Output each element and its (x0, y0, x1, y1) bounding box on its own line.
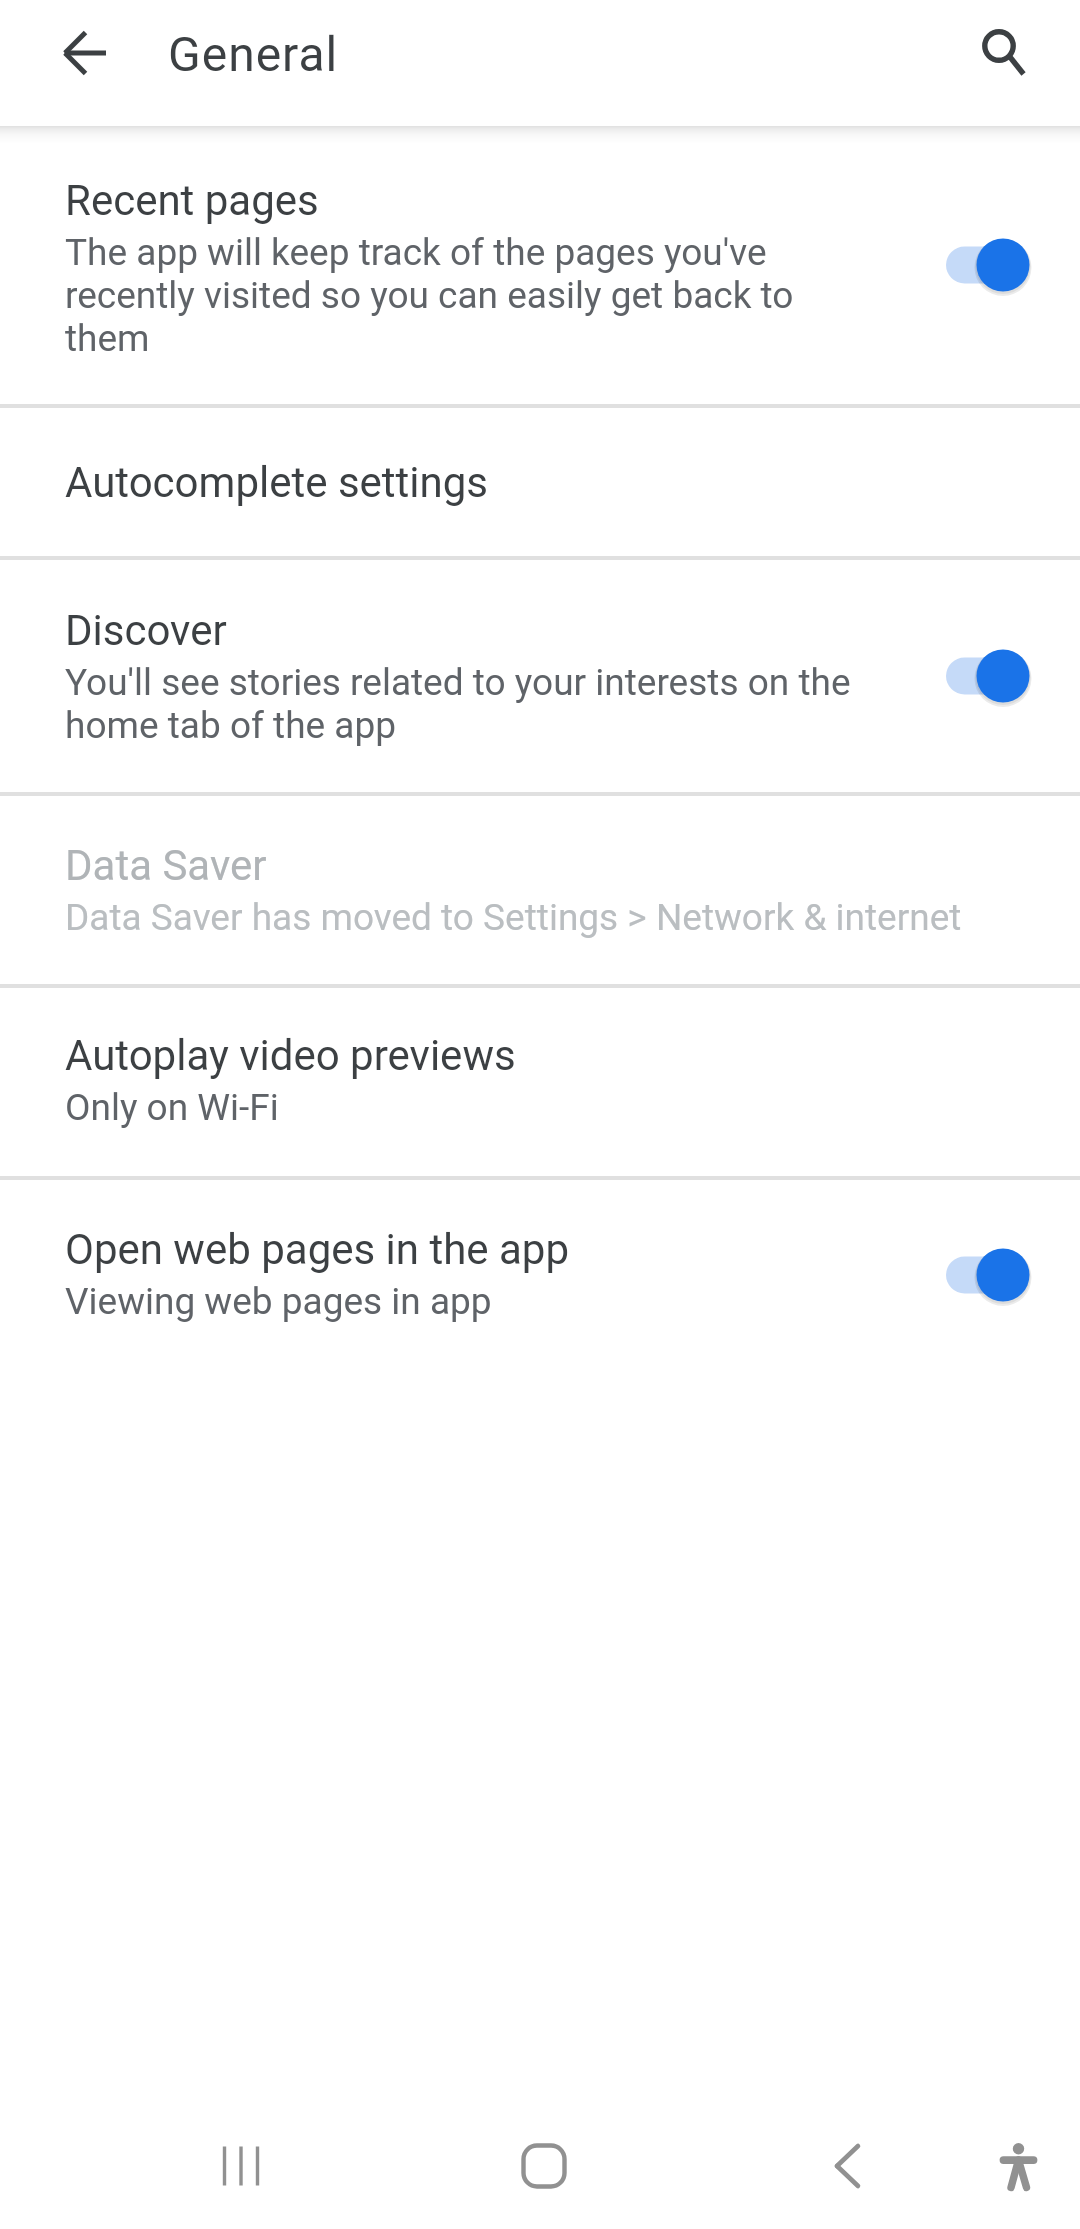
button[interactable]: Discover (0, 560, 1080, 792)
staticText: The app will keep track of the pages you… (65, 231, 865, 360)
button[interactable]: Search (954, 0, 1050, 96)
staticText: Autoplay video previews (65, 1031, 516, 1080)
button[interactable]: Accessibility (970, 2118, 1066, 2214)
staticText: Autocomplete settings (65, 458, 488, 507)
staticText: Data Saver has moved to Settings > Netwo… (65, 896, 962, 939)
button[interactable]: Home (496, 2118, 592, 2214)
staticText: General (168, 26, 339, 82)
staticText: Data Saver (65, 841, 267, 890)
staticText: Recent pages (65, 176, 319, 225)
button[interactable]: Autoplay video previews (0, 988, 1080, 1176)
button[interactable]: Navigate up (37, 5, 133, 101)
button[interactable]: Recent apps (194, 2118, 290, 2214)
staticText: Open web pages in the app (65, 1225, 569, 1274)
staticText: Viewing web pages in app (65, 1280, 492, 1323)
staticText: Discover (65, 606, 227, 655)
button[interactable]: Autocomplete settings (0, 408, 1080, 556)
button[interactable]: Recent pages (0, 126, 1080, 404)
button[interactable]: Back (799, 2118, 895, 2214)
staticText: You'll see stories related to your inter… (65, 661, 865, 747)
staticText: Only on Wi-Fi (65, 1086, 279, 1129)
button[interactable]: Open web pages in the app (0, 1180, 1080, 1369)
